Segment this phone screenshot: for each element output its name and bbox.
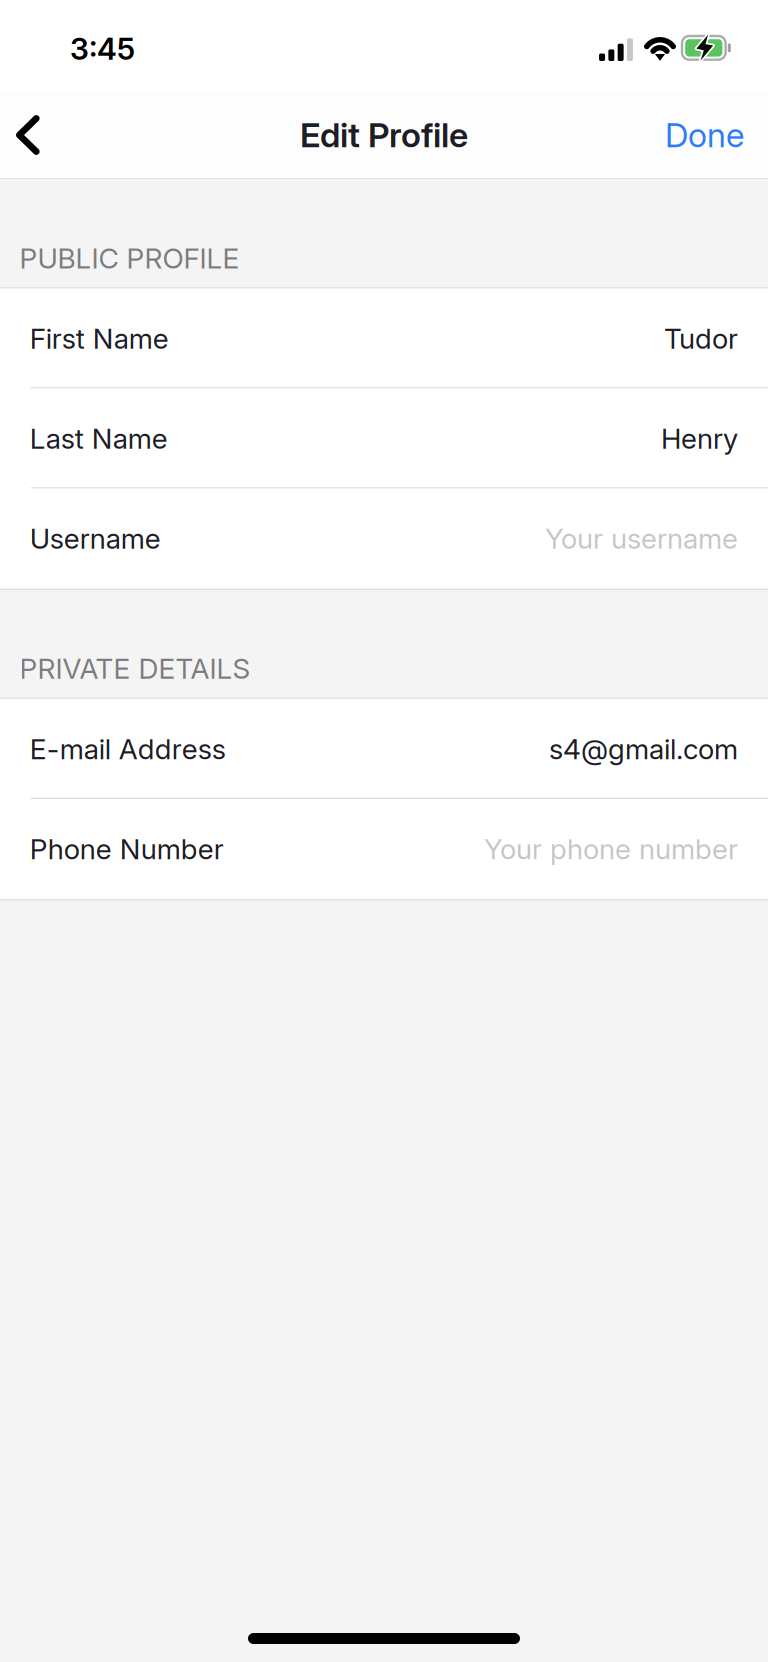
staticText: Username [30, 522, 161, 556]
button[interactable]: Back [0, 92, 74, 178]
staticText: Edit Profile [300, 114, 468, 155]
button[interactable]: Phone Number [0, 799, 768, 899]
staticText: PRIVATE DETAILS [19, 652, 250, 686]
staticText: s4@gmail.com [549, 732, 738, 766]
button[interactable]: Last Name [0, 389, 768, 489]
button[interactable]: First Name [0, 289, 768, 389]
staticText: Your username [545, 522, 738, 556]
staticText: Your phone number [484, 832, 738, 866]
staticText: E-mail Address [30, 732, 226, 766]
staticText: Tudor [664, 322, 738, 356]
button[interactable]: E-mail Address [0, 699, 768, 799]
staticText: Phone Number [30, 832, 224, 866]
button[interactable]: Username [0, 489, 768, 589]
button[interactable]: Done [641, 92, 768, 178]
staticText: PUBLIC PROFILE [19, 241, 239, 275]
staticText: First Name [30, 322, 169, 356]
staticText: 3:45 [70, 31, 135, 67]
staticText: Done [665, 115, 744, 155]
staticText: Last Name [30, 422, 168, 456]
staticText: Henry [661, 422, 738, 456]
